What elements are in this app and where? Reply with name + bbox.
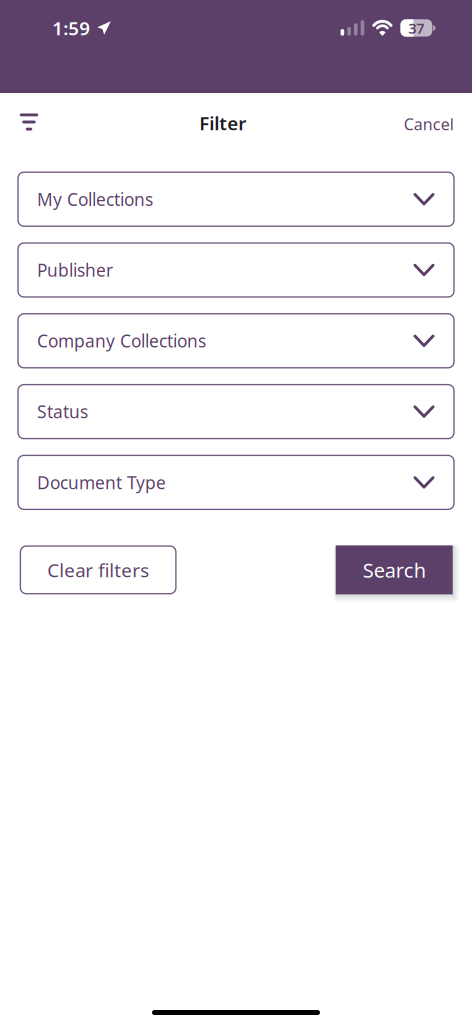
button[interactable]: Search [336, 545, 453, 594]
button[interactable]: Cancel [404, 93, 472, 151]
staticText: Search [363, 557, 426, 583]
staticText: 1:59 [52, 16, 90, 40]
staticText: Filter [199, 111, 246, 135]
button[interactable]: Status [18, 385, 454, 439]
staticText: My Collections [37, 188, 153, 211]
button[interactable]: Publisher [18, 243, 454, 297]
staticText: Status [37, 400, 88, 423]
staticText: Company Collections [37, 329, 206, 352]
staticText: Publisher [37, 258, 113, 281]
staticText: Clear filters [47, 557, 149, 582]
staticText: 37 [408, 18, 424, 38]
button[interactable]: Document Type [18, 455, 454, 509]
button[interactable]: My Collections [18, 172, 454, 226]
button[interactable]: Company Collections [18, 314, 454, 368]
button[interactable]: Clear filters [20, 546, 176, 594]
button[interactable]: Filter options [0, 93, 58, 151]
staticText: Document Type [37, 471, 166, 494]
staticText: Cancel [404, 113, 454, 135]
